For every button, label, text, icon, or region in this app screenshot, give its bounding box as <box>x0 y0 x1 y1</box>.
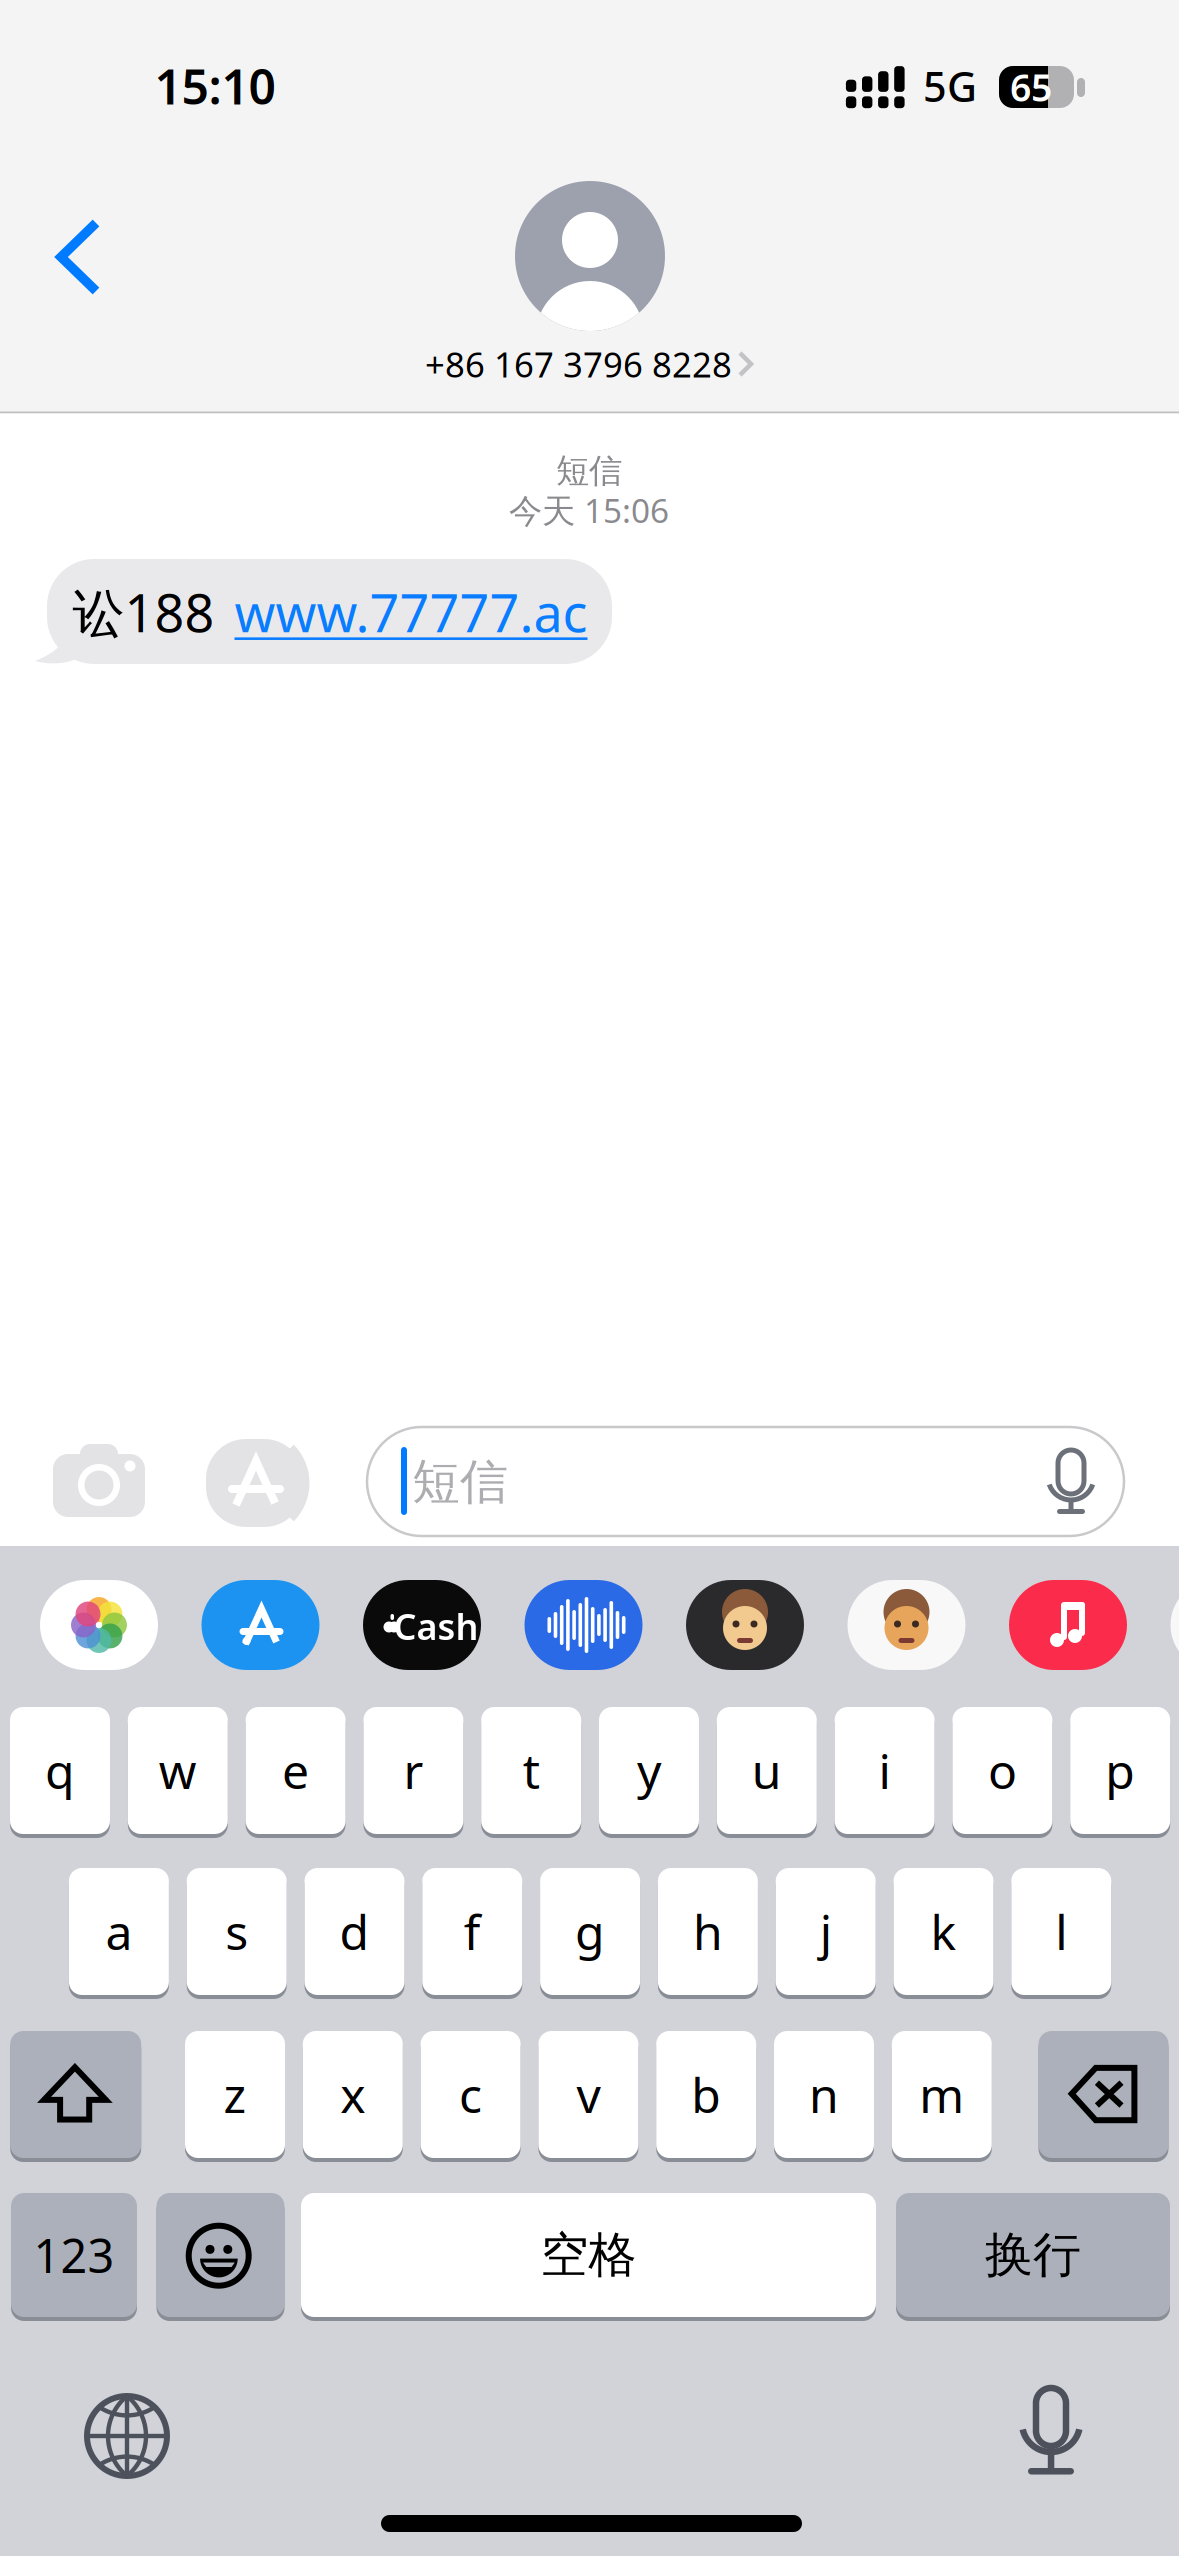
button[interactable]: Apps <box>196 1423 336 1543</box>
staticText: j <box>820 1900 832 1963</box>
staticText: 讼188 <box>72 577 214 647</box>
staticText: 123 <box>33 2224 114 2286</box>
button[interactable]: Camera <box>39 1423 159 1543</box>
staticText: y <box>637 1739 661 1802</box>
staticText: n <box>809 2063 839 2126</box>
button[interactable]: d <box>304 1868 404 1999</box>
button[interactable]: m <box>892 2031 992 2162</box>
button[interactable]: a <box>69 1868 169 1999</box>
button[interactable]: Dictation <box>996 2369 1106 2499</box>
button[interactable]: +86 167 3796 8228 <box>400 168 780 400</box>
staticText: a <box>105 1900 132 1963</box>
button[interactable]: Music <box>1009 1580 1127 1670</box>
button[interactable]: t <box>481 1707 581 1838</box>
button[interactable]: 空格 <box>301 2193 876 2321</box>
button[interactable]: Emoji <box>156 2193 284 2321</box>
staticText: +86 167 3796 8228 <box>425 341 732 387</box>
button[interactable]: u <box>717 1707 817 1838</box>
button[interactable]: Back <box>9 192 139 322</box>
button[interactable]: Audio <box>524 1580 642 1670</box>
button[interactable]: Shift <box>10 2031 141 2162</box>
button[interactable]: p <box>1070 1707 1170 1838</box>
button[interactable]: z <box>185 2031 285 2162</box>
staticText: z <box>223 2063 246 2126</box>
staticText: 短信 <box>556 450 622 491</box>
staticText: r <box>403 1739 423 1802</box>
button[interactable]: 换行 <box>896 2193 1170 2321</box>
button[interactable]: s <box>187 1868 287 1999</box>
staticText: f <box>464 1900 481 1963</box>
button[interactable]: k <box>893 1868 993 1999</box>
staticText: i <box>879 1739 891 1802</box>
button[interactable]: b <box>656 2031 756 2162</box>
staticText: h <box>693 1900 723 1963</box>
staticText: g <box>575 1900 605 1963</box>
button[interactable]: c <box>421 2031 521 2162</box>
button[interactable]: h <box>658 1868 758 1999</box>
button[interactable]: g <box>540 1868 640 1999</box>
staticText: b <box>691 2063 721 2126</box>
button[interactable]: w <box>128 1707 228 1838</box>
staticText: e <box>282 1739 309 1802</box>
staticText: q <box>45 1739 75 1802</box>
staticText: 65 <box>1010 62 1052 112</box>
staticText: o <box>988 1739 1017 1802</box>
staticText: w <box>159 1739 197 1802</box>
staticText: 换行 <box>985 2225 1081 2284</box>
staticText: l <box>1055 1900 1067 1963</box>
button[interactable]: l <box>1011 1868 1111 1999</box>
staticText: www.77777.ac <box>234 577 587 647</box>
staticText: s <box>225 1900 248 1963</box>
button[interactable]: e <box>246 1707 346 1838</box>
button[interactable]: Apple Cash <box>363 1580 481 1670</box>
staticText: d <box>339 1900 369 1963</box>
staticText: 今天 15:06 <box>509 488 669 532</box>
button[interactable]: v <box>538 2031 638 2162</box>
button[interactable]: y <box>599 1707 699 1838</box>
button[interactable]: r <box>363 1707 463 1838</box>
button[interactable]: n <box>774 2031 874 2162</box>
button[interactable]: j <box>776 1868 876 1999</box>
button[interactable]: q <box>10 1707 110 1838</box>
staticText: k <box>930 1900 956 1963</box>
button[interactable]: Photos <box>40 1580 158 1670</box>
button[interactable]: Switch keyboard <box>72 2371 182 2501</box>
button[interactable]: o <box>952 1707 1052 1838</box>
staticText: m <box>919 2063 964 2126</box>
staticText: Cash <box>393 1602 478 1650</box>
staticText: x <box>340 2063 365 2126</box>
button[interactable]: i <box>835 1707 935 1838</box>
button[interactable]: Memoji <box>686 1580 804 1670</box>
button[interactable]: App Store <box>201 1580 319 1670</box>
button[interactable]: Memoji stickers <box>847 1580 965 1670</box>
button[interactable]: 短信 <box>367 1427 1124 1536</box>
staticText: 5G <box>923 59 977 113</box>
staticText: u <box>752 1739 782 1802</box>
button[interactable]: Delete <box>1038 2031 1168 2162</box>
staticText: 15:10 <box>154 54 275 118</box>
staticText: c <box>459 2063 482 2126</box>
button[interactable]: More <box>1170 1580 1179 1670</box>
staticText: t <box>523 1739 540 1802</box>
staticText: v <box>576 2063 600 2126</box>
staticText: 短信 <box>412 1452 508 1511</box>
button[interactable]: x <box>303 2031 403 2162</box>
button[interactable]: f <box>422 1868 522 1999</box>
button[interactable]: 123 <box>11 2193 137 2321</box>
staticText: 空格 <box>540 2225 636 2284</box>
staticText: p <box>1105 1739 1135 1802</box>
